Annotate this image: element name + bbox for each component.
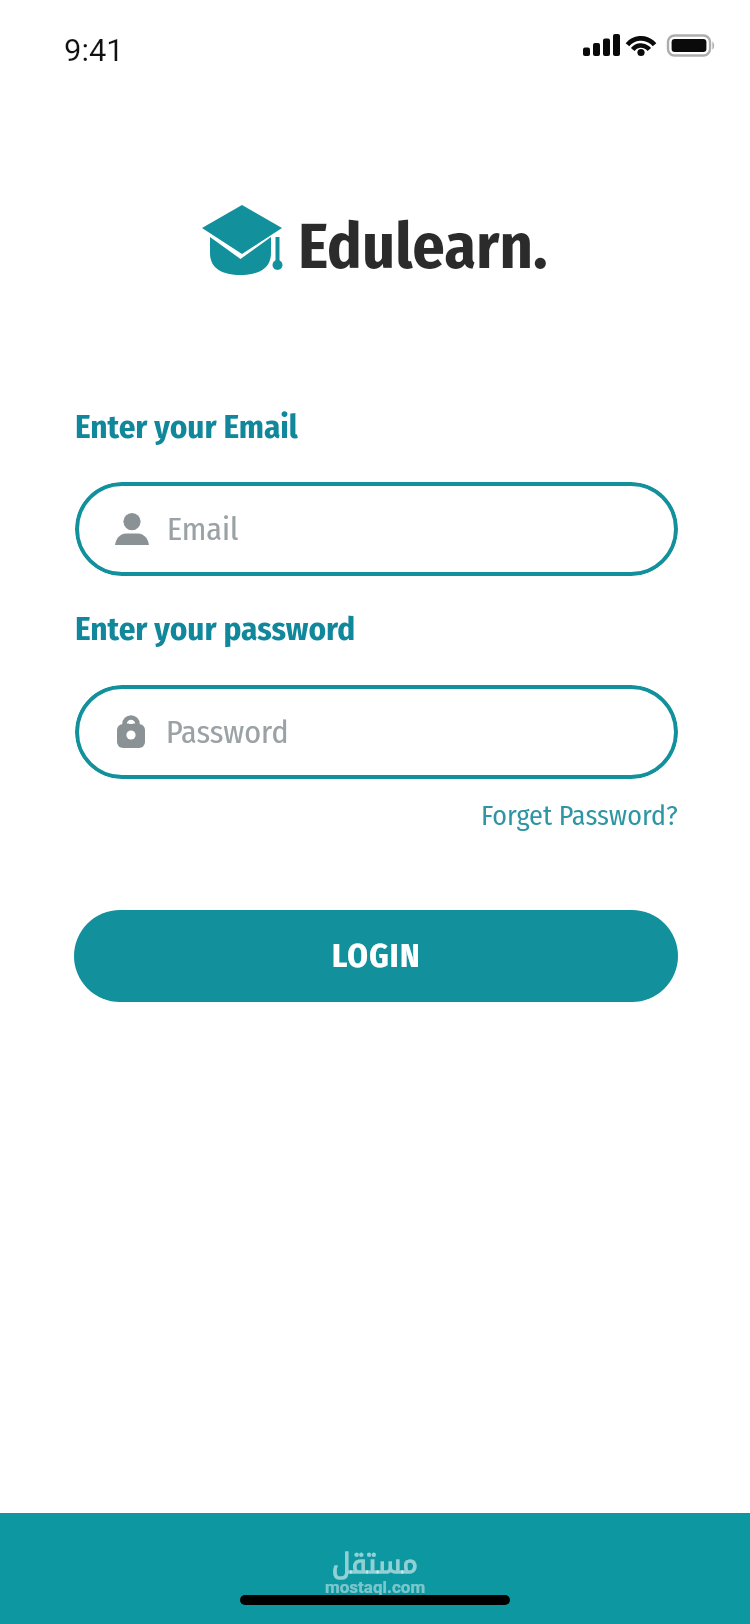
staticText: 9:41 xyxy=(64,32,124,68)
button[interactable]: Email xyxy=(75,482,678,576)
button[interactable]: LOGIN xyxy=(74,910,678,1002)
staticText: mostaql.com xyxy=(325,1577,426,1597)
button[interactable]: Password xyxy=(75,685,678,779)
button[interactable]: Forget Password? xyxy=(481,799,678,833)
staticText: Enter your password xyxy=(75,609,356,649)
staticText: مستقل xyxy=(332,1538,418,1582)
staticText: Edulearn. xyxy=(298,208,548,285)
staticText: Forget Password? xyxy=(481,799,678,833)
staticText: LOGIN xyxy=(332,936,421,976)
staticText: Email xyxy=(167,510,239,548)
staticText: Enter your Email xyxy=(75,407,298,447)
staticText: Password xyxy=(166,713,289,751)
